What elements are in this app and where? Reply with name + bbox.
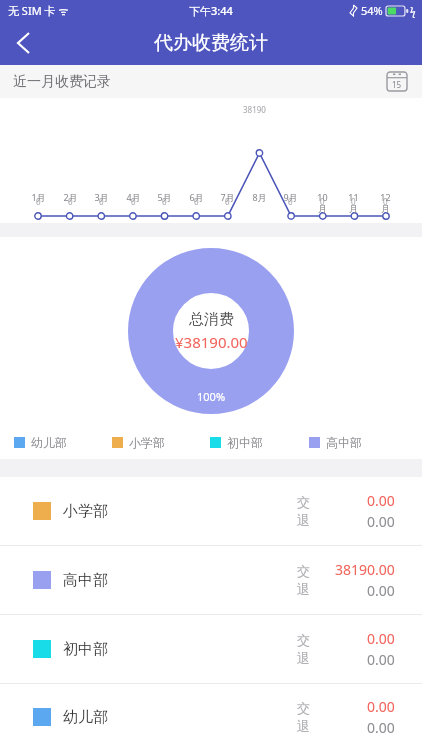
staticText: 0 bbox=[225, 196, 230, 207]
staticText: 10月 bbox=[314, 191, 331, 215]
staticText: ¥38190.00 bbox=[175, 332, 248, 352]
staticText: 退 bbox=[297, 650, 310, 666]
staticText: 无 SIM 卡 ᯤ bbox=[8, 3, 69, 18]
staticText: 0 bbox=[99, 196, 104, 207]
staticText: 近一月收费记录 bbox=[13, 73, 111, 91]
staticText: 0 bbox=[162, 196, 167, 207]
staticText: 3月 bbox=[94, 191, 109, 203]
staticText: 代办收费统计 bbox=[154, 31, 268, 55]
staticText: 0 bbox=[36, 196, 41, 207]
staticText: 4月 bbox=[126, 191, 141, 203]
button[interactable]: 小学部 bbox=[0, 477, 422, 545]
button[interactable]: 初中部 bbox=[210, 435, 309, 450]
staticText: 0.00 bbox=[367, 512, 395, 531]
button[interactable]: 高中部 bbox=[309, 435, 408, 450]
staticText: 初中部 bbox=[63, 640, 108, 659]
staticText: ϟ bbox=[410, 4, 416, 18]
staticText: 总消费 bbox=[189, 310, 234, 329]
staticText: 0 bbox=[351, 196, 356, 207]
staticText: 高中部 bbox=[63, 571, 108, 590]
staticText: 交 bbox=[297, 494, 310, 510]
staticText: 0.00 bbox=[367, 581, 395, 600]
staticText: 1月 bbox=[31, 191, 46, 203]
staticText: 11月 bbox=[345, 191, 362, 215]
staticText: 初中部 bbox=[227, 435, 263, 450]
staticText: 0 bbox=[194, 196, 199, 207]
button[interactable]: 小学部 bbox=[112, 435, 210, 450]
staticText: 小学部 bbox=[129, 435, 165, 450]
staticText: 9月 bbox=[283, 191, 298, 203]
button[interactable]: Back bbox=[0, 20, 46, 65]
staticText: 退 bbox=[297, 512, 310, 528]
staticText: 幼儿部 bbox=[31, 435, 67, 450]
staticText: 6月 bbox=[189, 191, 204, 203]
staticText: 0.00 bbox=[367, 718, 395, 737]
staticText: 38190 bbox=[243, 104, 266, 115]
staticText: 0.00 bbox=[367, 629, 395, 648]
staticText: 54% bbox=[361, 3, 383, 18]
staticText: 交 bbox=[297, 563, 310, 579]
staticText: 退 bbox=[297, 718, 310, 734]
staticText: 下午3:44 bbox=[189, 3, 233, 18]
staticText: 交 bbox=[297, 632, 310, 648]
staticText: 交 bbox=[297, 700, 310, 716]
staticText: 0 bbox=[131, 196, 136, 207]
staticText: 0 bbox=[383, 196, 388, 207]
staticText: 12月 bbox=[377, 191, 394, 215]
staticText: 5月 bbox=[157, 191, 172, 203]
staticText: 0 bbox=[320, 196, 325, 207]
staticText: 0.00 bbox=[367, 491, 395, 510]
staticText: 100% bbox=[197, 389, 226, 404]
staticText: 2月 bbox=[63, 191, 78, 203]
staticText: 38190.00 bbox=[335, 560, 395, 579]
button[interactable]: 幼儿部 bbox=[0, 684, 422, 750]
staticText: 幼儿部 bbox=[63, 708, 108, 727]
staticText: 7月 bbox=[220, 191, 235, 203]
button[interactable]: 幼儿部 bbox=[14, 435, 112, 450]
staticText: 0.00 bbox=[367, 650, 395, 669]
staticText: 0 bbox=[288, 196, 293, 207]
staticText: 8月 bbox=[252, 191, 267, 203]
staticText: 高中部 bbox=[326, 435, 362, 450]
button[interactable]: 高中部 bbox=[0, 546, 422, 614]
staticText: 0.00 bbox=[367, 697, 395, 716]
staticText: 0 bbox=[68, 196, 73, 207]
button[interactable]: 初中部 bbox=[0, 615, 422, 683]
staticText: 退 bbox=[297, 581, 310, 597]
staticText: 15 bbox=[392, 79, 402, 90]
staticText: 小学部 bbox=[63, 502, 108, 521]
button[interactable]: Select date bbox=[380, 65, 414, 98]
